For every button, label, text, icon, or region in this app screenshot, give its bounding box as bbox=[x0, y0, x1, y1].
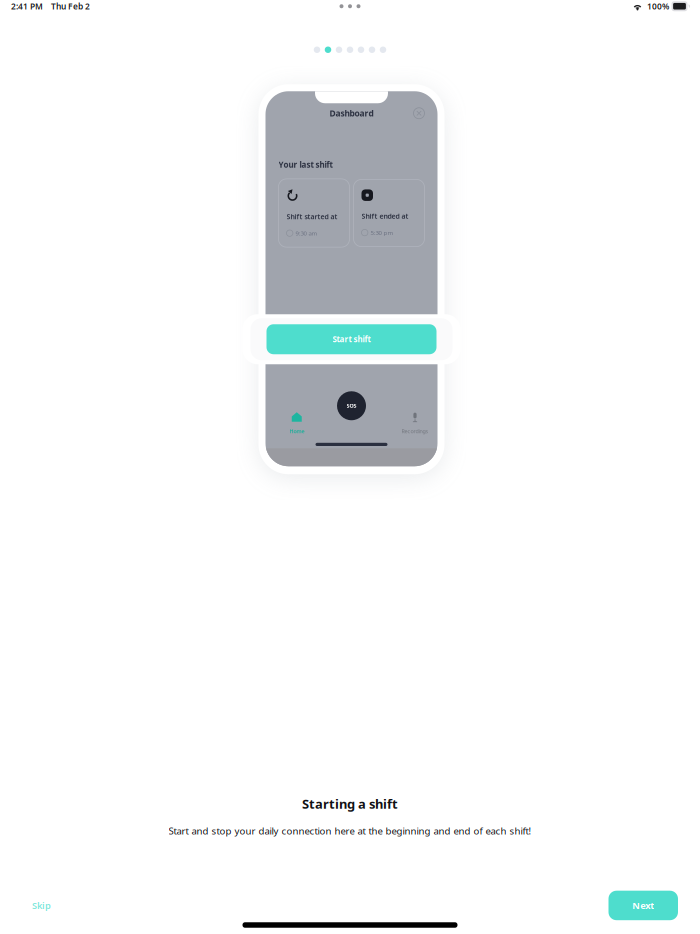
staticText: Thu Feb 2 bbox=[51, 1, 90, 12]
staticText: Start shift bbox=[332, 334, 370, 344]
button[interactable]: Next bbox=[608, 891, 678, 920]
staticText: Shift ended at bbox=[361, 211, 408, 221]
staticText: 100% bbox=[647, 1, 669, 12]
staticText: 5:30 pm bbox=[370, 229, 393, 237]
staticText: 2:41 PM bbox=[11, 1, 43, 12]
staticText: Your last shift bbox=[278, 159, 332, 170]
staticText: Recordings bbox=[401, 428, 428, 435]
staticText: SOS bbox=[346, 402, 356, 409]
staticText: Skip bbox=[32, 899, 51, 912]
staticText: Next bbox=[632, 899, 654, 912]
button[interactable]: Start shift bbox=[266, 324, 436, 354]
staticText: Shift started at bbox=[286, 212, 337, 221]
staticText: 9:30 am bbox=[295, 229, 317, 237]
staticText: Dashboard bbox=[329, 108, 373, 119]
staticText: Starting a shift bbox=[302, 795, 398, 812]
staticText: Home bbox=[289, 428, 304, 435]
button[interactable]: Skip bbox=[20, 890, 63, 921]
staticText: Start and stop your daily connection her… bbox=[168, 824, 531, 837]
